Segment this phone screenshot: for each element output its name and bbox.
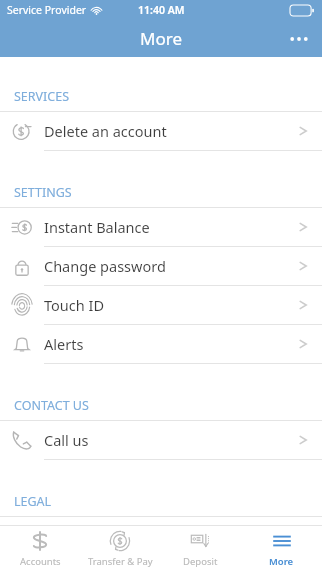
staticText: Deposit (183, 555, 218, 568)
button[interactable]: Alerts (0, 325, 322, 363)
button[interactable]: Delete an account (0, 112, 322, 150)
staticText: Change password (44, 256, 299, 276)
staticText: More (269, 555, 294, 568)
staticText: LEGAL (14, 493, 52, 510)
staticText: 11:40 AM (138, 3, 185, 17)
button[interactable]: Touch ID (0, 286, 322, 324)
button[interactable]: Transfer & Pay (80, 526, 160, 572)
staticText: Transfer & Pay (88, 555, 153, 568)
button[interactable]: Change password (0, 247, 322, 285)
staticText: SERVICES (14, 88, 70, 105)
button[interactable]: More (241, 526, 322, 572)
staticText: Delete an account (44, 121, 299, 141)
staticText: Touch ID (44, 295, 299, 315)
button[interactable]: Instant Balance (0, 208, 322, 246)
button[interactable]: Deposit (160, 526, 241, 572)
staticText: Service Provider (7, 3, 87, 17)
staticText: SETTINGS (14, 184, 72, 201)
staticText: Alerts (44, 334, 299, 354)
staticText: More (140, 27, 182, 50)
button[interactable]: More options (282, 22, 316, 56)
staticText: Accounts (20, 555, 61, 568)
staticText: CONTACT US (14, 397, 89, 414)
staticText: Call us (44, 430, 299, 450)
button[interactable]: Accounts (0, 526, 80, 572)
staticText: Instant Balance (44, 217, 299, 237)
button[interactable]: Call us (0, 421, 322, 459)
